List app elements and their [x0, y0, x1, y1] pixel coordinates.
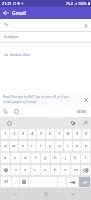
staticText: b: [54, 167, 57, 173]
button[interactable]: f: [31, 153, 40, 163]
button[interactable]: q: [1, 141, 9, 151]
button[interactable]: Insert emoji: [11, 106, 22, 117]
staticText: Gmail: [12, 10, 26, 17]
button[interactable]: Back: [0, 7, 12, 19]
button[interactable]: c: [31, 165, 40, 175]
button[interactable]: y: [46, 141, 54, 151]
button[interactable]: 3: [19, 129, 27, 139]
button[interactable]: Attach file: [0, 106, 11, 117]
button[interactable]: Enter: [79, 177, 90, 187]
staticText: 2: [13, 131, 16, 137]
button[interactable]: r: [28, 141, 36, 151]
button[interactable]: Google search: [68, 118, 78, 128]
staticText: r: [31, 143, 33, 149]
button[interactable]: v: [41, 165, 50, 175]
staticText: 4: [31, 131, 34, 137]
button[interactable]: Recent apps: [9, 188, 21, 200]
button[interactable]: 8: [64, 129, 72, 139]
staticText: q: [4, 143, 7, 149]
staticText: 0: [85, 131, 88, 137]
staticText: Newton Mail: [10, 52, 31, 57]
staticText: z: [15, 167, 17, 173]
staticText: 8: [67, 131, 70, 137]
staticText: y: [49, 143, 52, 149]
staticText: SEND: [77, 109, 87, 114]
staticText: 7: [58, 131, 61, 137]
button[interactable]: 2: [10, 129, 18, 139]
staticText: d: [24, 155, 27, 161]
button[interactable]: 9: [73, 129, 81, 139]
button[interactable]: Shift: [1, 165, 10, 175]
button[interactable]: d: [21, 153, 30, 163]
button[interactable]: j: [61, 153, 70, 163]
button[interactable]: t: [37, 141, 45, 151]
staticText: !#1: [4, 180, 9, 184]
button[interactable]: h: [51, 153, 60, 163]
button[interactable]: Expand recipients: [80, 20, 91, 31]
button[interactable]: 4: [28, 129, 36, 139]
button[interactable]: 1: [1, 129, 9, 139]
staticText: via: [4, 52, 10, 57]
staticText: w: [12, 143, 16, 149]
button[interactable]: o: [73, 141, 81, 151]
staticText: 3: [22, 131, 25, 137]
button[interactable]: Period: [58, 177, 66, 187]
staticText: g: [44, 155, 47, 161]
staticText: h: [54, 155, 57, 161]
button[interactable]: Comma: [12, 177, 19, 187]
button[interactable]: w: [10, 141, 18, 151]
button[interactable]: Expand toolbar: [80, 118, 90, 128]
button[interactable]: Emoji: [20, 177, 28, 187]
button[interactable]: 6: [46, 129, 54, 139]
staticText: p: [85, 143, 88, 149]
staticText: 9: [76, 131, 79, 137]
button[interactable]: x: [21, 165, 30, 175]
button[interactable]: i: [64, 141, 72, 151]
staticText: 1: [4, 131, 7, 137]
staticText: v: [44, 167, 47, 173]
button[interactable]: u: [55, 141, 63, 151]
staticText: f: [35, 155, 37, 161]
button[interactable]: SEND: [73, 106, 91, 117]
button[interactable]: Back: [67, 188, 79, 200]
staticText: t: [40, 143, 42, 149]
button[interactable]: s: [11, 153, 20, 163]
button[interactable]: Backspace: [81, 165, 90, 175]
staticText: c: [34, 167, 37, 173]
staticText: n: [64, 167, 67, 173]
staticText: e: [22, 143, 25, 149]
staticText: 5: [40, 131, 43, 137]
button[interactable]: Keyboard settings: [4, 118, 14, 128]
button[interactable]: z: [11, 165, 20, 175]
staticText: j: [65, 155, 67, 161]
staticText: ,: [15, 179, 17, 185]
button[interactable]: k: [71, 153, 80, 163]
button[interactable]: p: [82, 141, 90, 151]
staticText: x: [24, 167, 27, 173]
staticText: o: [76, 143, 79, 149]
staticText: .: [61, 179, 63, 185]
button[interactable]: b: [51, 165, 60, 175]
button[interactable]: e: [19, 141, 27, 151]
staticText: l: [85, 155, 87, 161]
staticText: a: [4, 155, 7, 161]
button[interactable]: a: [1, 153, 10, 163]
button[interactable]: Home: [40, 188, 52, 200]
staticText: To: [4, 22, 9, 28]
staticText: s: [14, 155, 17, 161]
staticText: i: [67, 143, 69, 149]
staticText: Subject: [4, 34, 19, 40]
button[interactable]: 7: [55, 129, 63, 139]
button[interactable]: l: [81, 153, 90, 163]
staticText: email people in Europe: [3, 100, 37, 104]
button[interactable]: n: [61, 165, 70, 175]
button[interactable]: 0: [82, 129, 90, 139]
staticText: 76.4: [66, 1, 73, 6]
button[interactable]: m: [71, 165, 80, 175]
button[interactable]: Dismiss tip: [80, 94, 91, 105]
button[interactable]: g: [41, 153, 50, 163]
button[interactable]: 5: [37, 129, 45, 139]
button[interactable]: Symbols: [1, 177, 11, 187]
button[interactable]: Next field: [67, 177, 78, 187]
